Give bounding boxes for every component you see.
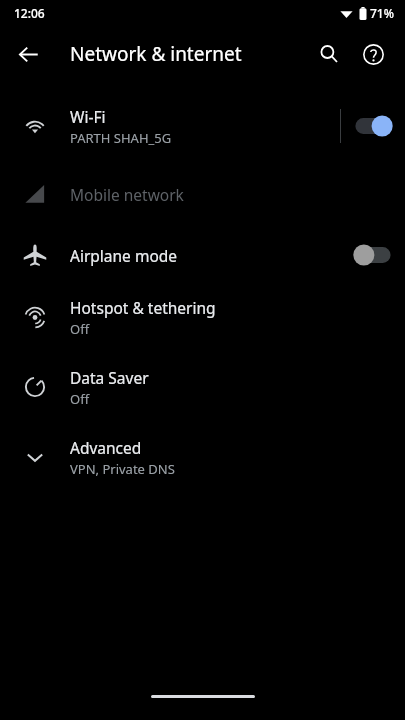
staticText: Network & internet — [70, 41, 242, 67]
button[interactable]: Help — [351, 32, 395, 76]
button[interactable]: Switch off — [341, 233, 405, 277]
button[interactable]: Advanced — [0, 422, 405, 492]
staticText: Off — [70, 320, 90, 338]
staticText: Mobile network — [70, 184, 184, 205]
staticText: 71% — [370, 5, 394, 21]
button[interactable]: Data Saver — [0, 352, 405, 422]
button[interactable]: Back — [6, 32, 50, 76]
staticText: Airplane mode — [70, 245, 178, 266]
button[interactable]: Switch on — [341, 104, 405, 148]
button[interactable]: Search — [307, 32, 351, 76]
staticText: Advanced — [70, 437, 142, 458]
staticText: Data Saver — [70, 367, 149, 388]
button[interactable]: Wi-Fi — [0, 92, 405, 160]
staticText: Wi-Fi — [70, 106, 106, 127]
button[interactable]: Mobile network — [0, 160, 405, 228]
staticText: Hotspot & tethering — [70, 297, 216, 318]
staticText: PARTH SHAH_5G — [70, 129, 172, 147]
button[interactable]: Airplane mode — [0, 228, 405, 282]
staticText: Off — [70, 390, 90, 408]
staticText: VPN, Private DNS — [70, 460, 175, 478]
button[interactable]: Hotspot & tethering — [0, 282, 405, 352]
staticText: 12:06 — [14, 5, 45, 21]
